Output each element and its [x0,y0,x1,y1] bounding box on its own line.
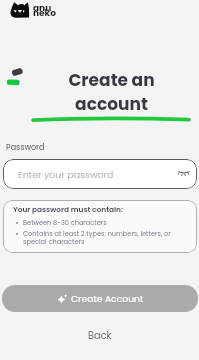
staticText: Enter your password [18,168,114,181]
button[interactable]: Back [0,327,199,345]
staticText: Password [6,142,45,153]
button[interactable]: Enter your password [3,159,197,189]
staticText: Contains at least 2 types: numbers, lett… [23,229,185,247]
staticText: neko [33,7,56,20]
staticText: Create an [68,68,155,92]
button[interactable]: Create Account [2,285,198,312]
staticText: Back [88,329,112,343]
staticText: Create Account [71,292,144,305]
staticText: account [75,92,148,116]
staticText: Your password must contain: [13,204,123,214]
staticText: Between 8-30 characters [23,218,107,227]
staticText: anu [33,2,52,15]
button[interactable]: Show password [177,167,191,181]
